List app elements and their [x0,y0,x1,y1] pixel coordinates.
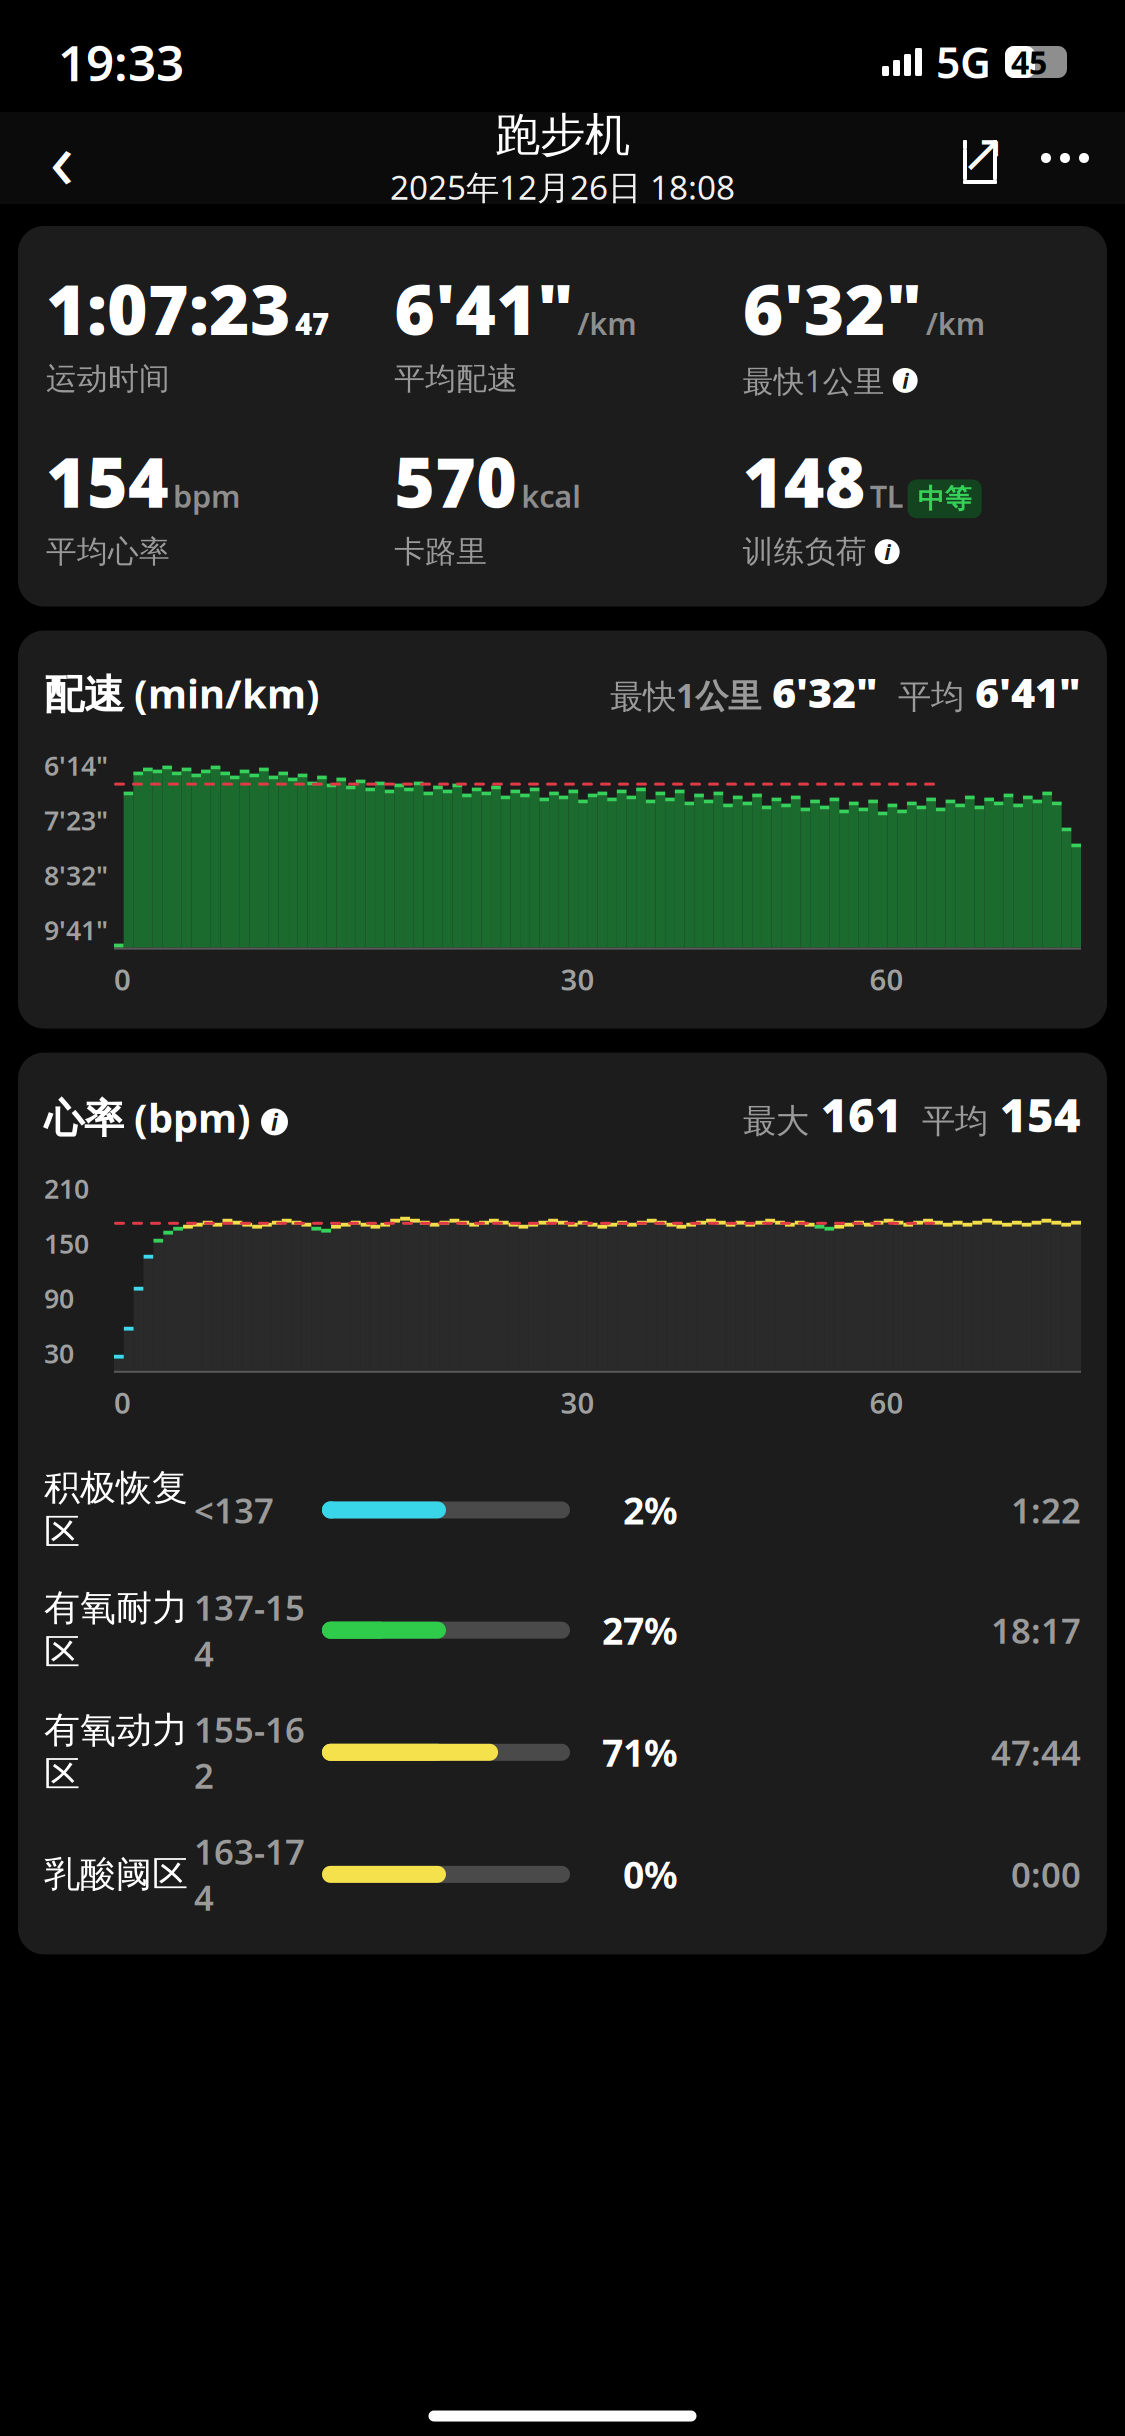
staticText: 163-174 [194,1828,305,1920]
staticText: 训练负荷 [743,533,867,571]
staticText: 90 [44,1280,74,1316]
staticText: 平均配速 [394,360,518,398]
staticText: 155-162 [194,1706,305,1798]
staticText: 6'41" [394,262,573,354]
staticText: 0:00 [1011,1851,1081,1897]
staticText: TL [870,475,904,516]
staticText: 161 [809,1085,902,1145]
staticText: i [884,537,890,566]
staticText: 60 [869,1383,903,1422]
staticText: 30 [560,960,594,999]
staticText: 137-154 [194,1584,305,1676]
staticText: 2% [623,1485,678,1535]
staticText: 5G [936,34,991,90]
staticText: 8'32" [44,857,108,893]
button[interactable]: Share [941,114,1019,202]
staticText: 积极恢复区 [44,1466,188,1554]
staticText: i [271,1107,278,1137]
staticText: 心率 (bpm) [44,1091,251,1144]
staticText: 0 [114,960,131,999]
staticText: 19:33 [58,29,184,95]
staticText: 0% [623,1850,678,1899]
staticText: 配速 (min/km) [44,666,320,720]
staticText: 最快 [610,676,676,717]
staticText: 570 [394,435,517,527]
staticText: 有氧耐力区 [44,1586,188,1674]
staticText: 1公里 [676,673,761,717]
staticText: 运动时间 [46,360,170,398]
staticText: 18:17 [991,1607,1081,1653]
staticText: ‹ [49,105,74,211]
staticText: 乳酸阈区 [44,1852,188,1896]
staticText: 6'32" [743,262,922,354]
staticText: 1:07:23 [46,262,291,354]
staticText: <137 [194,1487,274,1533]
button[interactable]: More options [1019,114,1111,202]
staticText: bpm [173,475,240,516]
staticText: 卡路里 [394,533,487,571]
staticText: /km [926,303,985,343]
staticText: 71% [602,1727,678,1777]
staticText: 9'41" [44,912,108,948]
staticText: 6'32" [761,664,878,719]
staticText: 有氧动力区 [44,1708,188,1796]
staticText: 跑步机 [495,107,630,163]
staticText: 平均 [902,1101,988,1142]
staticText: i [902,366,908,395]
staticText: 30 [560,1383,594,1422]
staticText: 30 [44,1335,74,1371]
staticText: 154 [988,1085,1081,1145]
staticText: 154 [46,435,169,527]
staticText: 最大 [743,1101,809,1142]
staticText: 60 [869,960,903,999]
staticText: 27% [602,1605,678,1655]
staticText: 6'41" [964,664,1081,719]
staticText: 1:22 [1011,1487,1081,1533]
staticText: 中等 [918,482,972,515]
staticText: 210 [44,1171,89,1206]
staticText: 47:44 [991,1729,1081,1775]
staticText: 平均心率 [46,533,170,571]
staticText: 2025年12月26日 18:08 [390,165,735,209]
staticText: ↗ [960,123,1005,183]
staticText: 150 [44,1226,89,1261]
staticText: kcal [521,475,581,516]
staticText: 47 [295,304,329,343]
staticText: 平均 [878,676,964,717]
staticText: 6'14" [44,748,108,783]
button[interactable]: Back [14,114,110,202]
staticText: /km [577,303,636,343]
staticText: 7'23" [44,802,108,838]
staticText: 0 [114,1383,131,1422]
staticText: 148 [743,435,866,527]
staticText: 45 [1011,41,1047,83]
staticText: 最快1公里 [743,360,885,401]
